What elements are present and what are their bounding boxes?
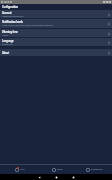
staticText: Warning time <box>2 30 18 34</box>
button[interactable]: Language <box>0 38 112 47</box>
button[interactable]: Warning time <box>0 29 112 38</box>
button[interactable]: Configuration <box>75 165 112 174</box>
button[interactable]: Alerts <box>0 165 38 174</box>
staticText: Language <box>2 39 14 43</box>
staticText: thewriter@outlook.com <box>2 15 24 18</box>
staticText: English (US) <box>2 43 13 46</box>
staticText: Notification levels <box>2 20 23 24</box>
staticText: About <box>2 51 10 55</box>
button[interactable]: Recent apps <box>70 174 76 180</box>
staticText: Configuration <box>2 5 19 9</box>
button[interactable]: Home <box>53 174 59 180</box>
button[interactable]: Notification levels <box>0 19 112 29</box>
staticText: Nope Arrows, Upcoming Width, Considerati… <box>2 24 53 27</box>
button[interactable]: Account <box>0 10 112 19</box>
staticText: Search <box>57 168 63 171</box>
staticText: Account <box>2 11 12 15</box>
button[interactable]: About <box>0 49 112 57</box>
button[interactable]: Back <box>36 174 42 180</box>
staticText: Configuration <box>91 168 103 171</box>
staticText: 1 hour <box>2 34 8 37</box>
button[interactable]: Search <box>38 165 75 174</box>
staticText: Alerts <box>20 168 25 171</box>
